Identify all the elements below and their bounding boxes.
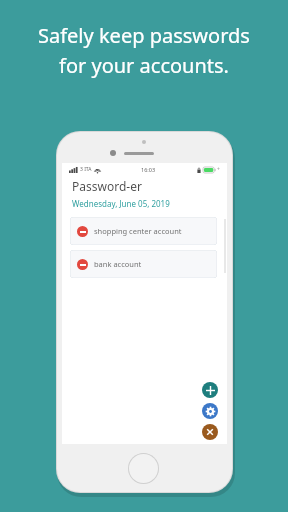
staticText: Safely keep passwords — [38, 22, 250, 49]
staticText: 16:03 — [141, 166, 156, 173]
staticText: bank account — [94, 259, 142, 269]
staticText: 3 ITA — [80, 166, 92, 173]
button[interactable]: bank account — [70, 250, 217, 278]
button[interactable]: Settings — [202, 403, 218, 419]
button[interactable]: Close — [202, 424, 218, 440]
button[interactable]: shopping center account — [70, 217, 217, 245]
staticText: + — [217, 166, 220, 173]
staticText: for your accounts. — [59, 52, 229, 79]
staticText: Password-er — [72, 178, 142, 194]
staticText: Wednesday, June 05, 2019 — [72, 198, 170, 209]
staticText: shopping center account — [94, 226, 182, 236]
button[interactable]: Add account — [202, 382, 218, 398]
